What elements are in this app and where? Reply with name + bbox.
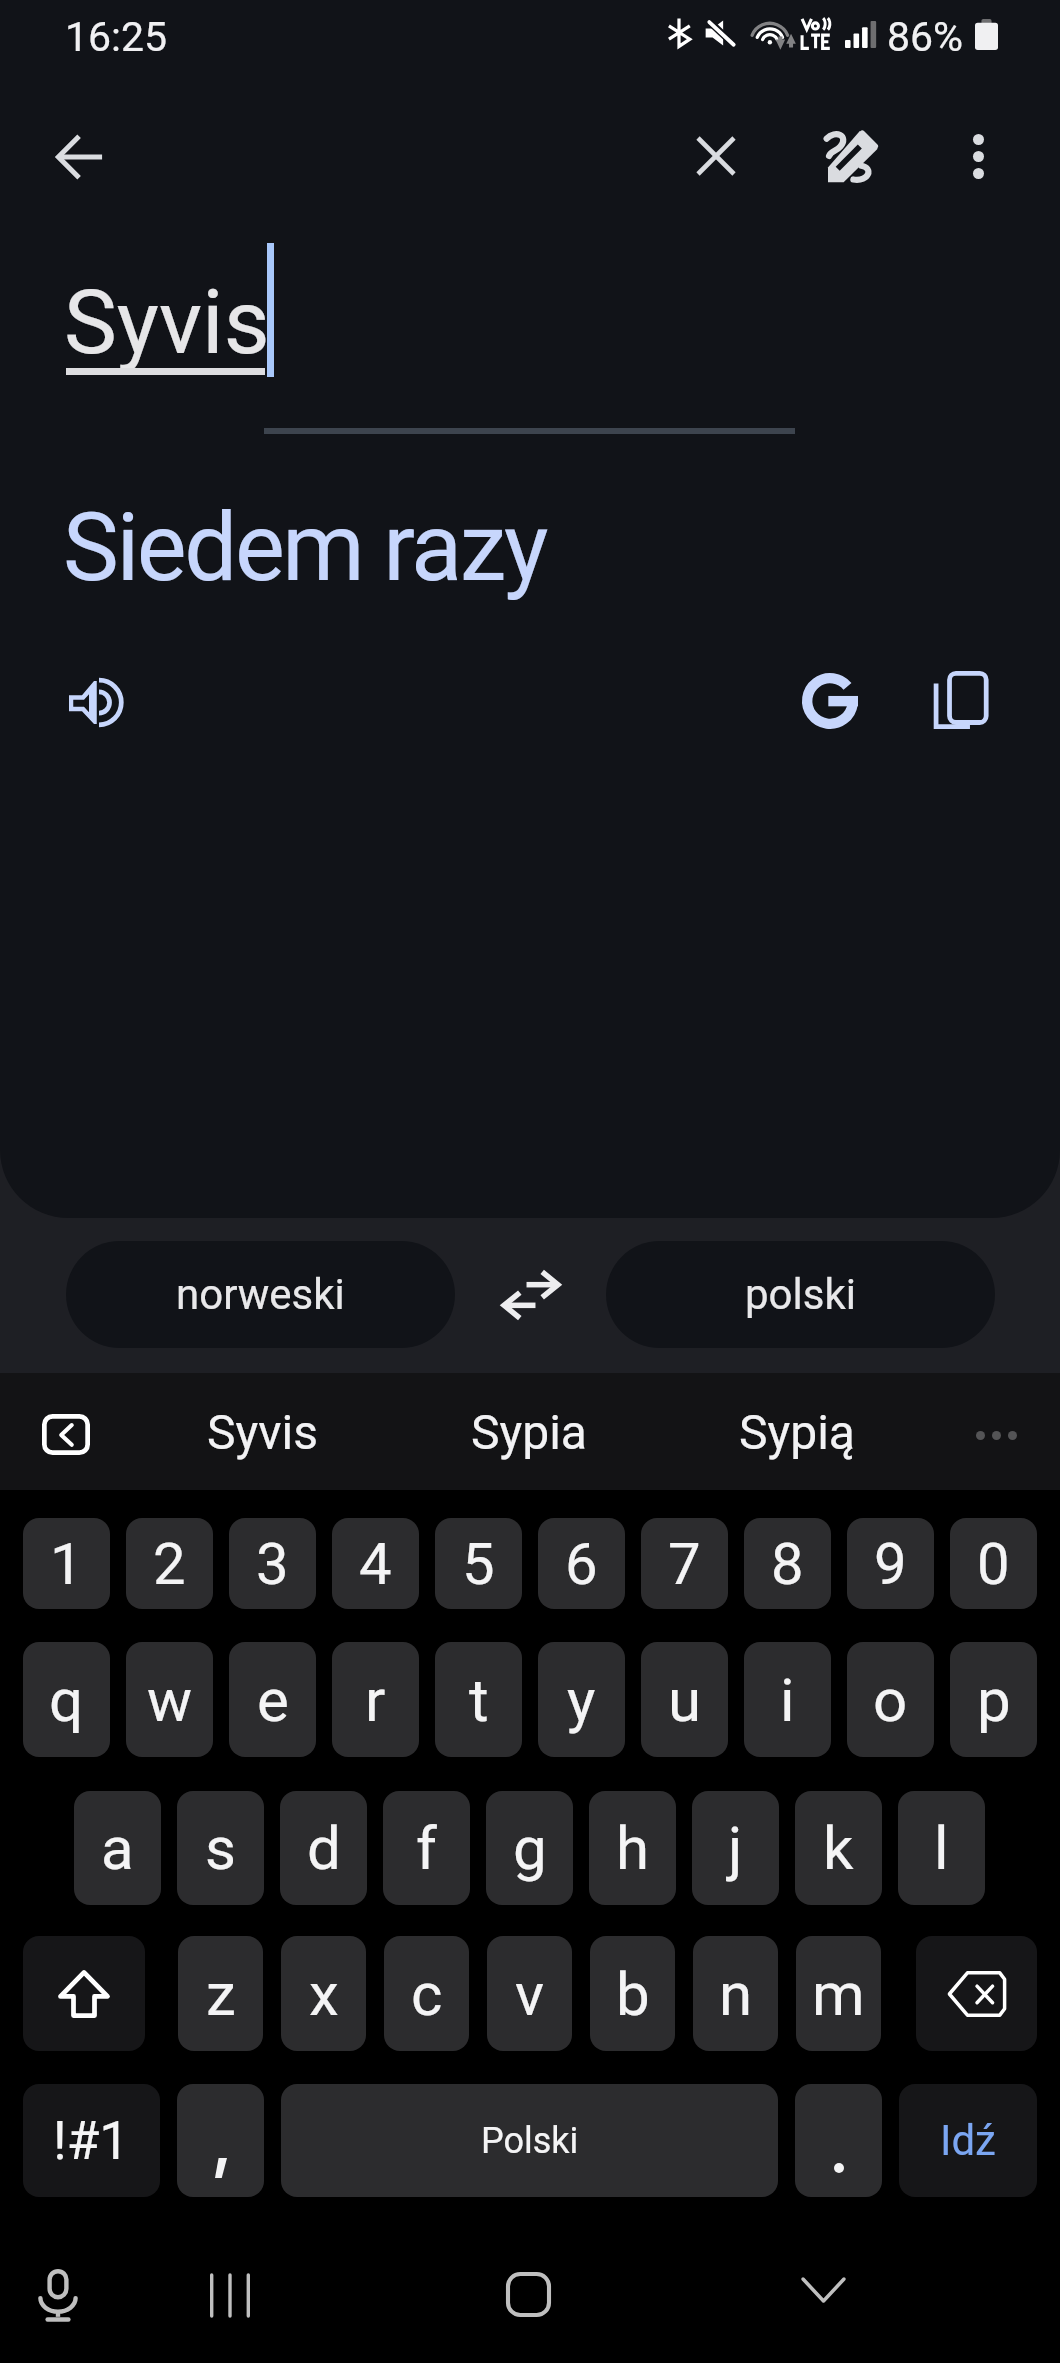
button[interactable]: Listen — [46, 654, 142, 750]
staticText: polski — [745, 1270, 856, 1319]
button[interactable]: norweski — [66, 1241, 455, 1348]
staticText: t — [469, 1665, 489, 1735]
staticText: Sypią — [739, 1404, 855, 1460]
button[interactable]: Recent apps — [155, 2240, 305, 2350]
button[interactable]: Sypia — [395, 1373, 663, 1490]
button[interactable]: Shift — [23, 1936, 145, 2051]
staticText: l — [934, 1813, 949, 1883]
staticText: v — [515, 1959, 545, 2029]
staticText: n — [719, 1959, 753, 2029]
button[interactable]: g — [486, 1791, 573, 1905]
button[interactable]: z — [178, 1936, 263, 2051]
staticText: 3 — [256, 1530, 289, 1598]
button[interactable]: Voice input — [0, 2240, 150, 2350]
button[interactable] — [795, 2084, 882, 2197]
button[interactable] — [177, 2084, 264, 2197]
button[interactable]: e — [229, 1642, 316, 1757]
staticText: !#1 — [53, 2110, 130, 2172]
button[interactable]: Search with Google — [782, 653, 878, 749]
button[interactable]: j — [692, 1791, 779, 1905]
staticText: k — [823, 1813, 854, 1883]
button[interactable]: n — [693, 1936, 778, 2051]
button[interactable]: Idź — [899, 2084, 1037, 2197]
button[interactable]: Home — [453, 2239, 603, 2349]
staticText: d — [307, 1813, 341, 1883]
button[interactable]: h — [589, 1791, 676, 1905]
staticText: s — [205, 1813, 236, 1883]
staticText: a — [101, 1813, 134, 1883]
button[interactable]: Expand toolbar — [27, 1400, 105, 1468]
staticText: q — [49, 1665, 84, 1735]
staticText: y — [567, 1665, 596, 1735]
button[interactable]: b — [590, 1936, 675, 2051]
button[interactable]: l — [898, 1791, 985, 1905]
staticText: o — [873, 1665, 908, 1735]
button[interactable]: Backspace — [916, 1936, 1037, 2051]
staticText: u — [668, 1665, 702, 1735]
button[interactable]: Hide keyboard — [748, 2235, 898, 2345]
staticText: h — [616, 1813, 650, 1883]
button[interactable]: 5 — [435, 1518, 522, 1609]
staticText: z — [206, 1959, 236, 2029]
button[interactable]: k — [795, 1791, 882, 1905]
button[interactable]: 6 — [538, 1518, 625, 1609]
button[interactable]: q — [23, 1642, 110, 1757]
staticText: Idź — [940, 2116, 996, 2165]
button[interactable]: i — [744, 1642, 831, 1757]
button[interactable]: 4 — [332, 1518, 419, 1609]
staticText: Sypia — [471, 1404, 587, 1460]
button[interactable]: 3 — [229, 1518, 316, 1609]
button[interactable]: a — [74, 1791, 161, 1905]
staticText: i — [780, 1665, 795, 1735]
button[interactable]: Back — [32, 109, 128, 205]
button[interactable]: m — [796, 1936, 881, 2051]
button[interactable]: y — [538, 1642, 625, 1757]
button[interactable]: 9 — [847, 1518, 934, 1609]
button[interactable]: Clear text — [668, 108, 764, 204]
button[interactable]: Sypią — [663, 1373, 931, 1490]
button[interactable]: f — [383, 1791, 470, 1905]
button[interactable]: t — [435, 1642, 522, 1757]
staticText: w — [147, 1665, 193, 1735]
staticText: 86% — [887, 13, 964, 61]
staticText: c — [411, 1959, 443, 2029]
staticText: g — [513, 1813, 547, 1883]
button[interactable]: Polski — [281, 2084, 778, 2197]
staticText: j — [728, 1813, 743, 1883]
staticText: 0 — [977, 1530, 1010, 1598]
button[interactable]: 8 — [744, 1518, 831, 1609]
button[interactable]: 1 — [23, 1518, 110, 1609]
button[interactable]: Copy translation — [913, 652, 1009, 748]
button[interactable]: 0 — [950, 1518, 1037, 1609]
staticText: Siedem razy — [63, 493, 546, 603]
staticText: 4 — [359, 1530, 392, 1598]
button[interactable]: 7 — [641, 1518, 728, 1609]
button[interactable]: w — [126, 1642, 213, 1757]
staticText: 7 — [668, 1530, 701, 1598]
button[interactable]: Swap languages — [471, 1241, 590, 1348]
staticText: 2 — [153, 1530, 186, 1598]
staticText: r — [365, 1665, 386, 1735]
staticText: Syvis — [207, 1404, 318, 1460]
staticText: m — [812, 1959, 865, 2029]
button[interactable]: d — [280, 1791, 367, 1905]
button[interactable]: polski — [606, 1241, 995, 1348]
button[interactable]: u — [641, 1642, 728, 1757]
button[interactable]: 2 — [126, 1518, 213, 1609]
staticText: 1 — [50, 1530, 83, 1598]
button[interactable]: Handwriting input — [804, 108, 900, 204]
button[interactable]: Symbols — [23, 2084, 160, 2197]
button[interactable]: c — [384, 1936, 469, 2051]
button[interactable]: r — [332, 1642, 419, 1757]
button[interactable]: More suggestions — [955, 1399, 1038, 1471]
button[interactable]: p — [950, 1642, 1037, 1757]
staticText: b — [616, 1959, 650, 2029]
button[interactable]: Syvis — [128, 1373, 396, 1490]
button[interactable]: s — [177, 1791, 264, 1905]
staticText: Syvis — [64, 270, 270, 374]
button[interactable]: v — [487, 1936, 572, 2051]
button[interactable]: More options — [930, 108, 1026, 204]
staticText: e — [257, 1665, 289, 1735]
button[interactable]: o — [847, 1642, 934, 1757]
button[interactable]: x — [281, 1936, 366, 2051]
